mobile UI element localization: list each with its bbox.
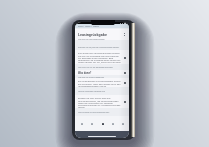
button[interactable]: Bringen Sie zum Termin bitte alle Fahrze… bbox=[75, 95, 129, 108]
button[interactable]: Was muss ich vor der Rückgabe beachten? bbox=[78, 65, 124, 68]
button[interactable]: Erfahren Sie hier, wie die Leasingrückga… bbox=[78, 45, 124, 48]
button[interactable]: Profile bbox=[118, 119, 127, 128]
button[interactable]: Home > Service > Leasing bbox=[75, 24, 129, 28]
button[interactable]: Menu bbox=[98, 119, 107, 128]
button[interactable]: Welche Unterlagen benötige ich? bbox=[78, 89, 124, 92]
staticText: Home > Service > Leasing bbox=[78, 25, 99, 27]
staticText: Bringen Sie zum Termin bitte alle Fahrze… bbox=[78, 97, 122, 108]
staticText: Wie wird der Zustand bewertet? bbox=[78, 76, 105, 78]
button[interactable]: Home bbox=[77, 119, 86, 128]
staticText: Was muss ich vor der Rückgabe beachten? bbox=[78, 66, 113, 68]
button[interactable]: Wie wird der Zustand bewertet? bbox=[78, 75, 124, 78]
staticText: 9:41 bbox=[78, 23, 82, 25]
staticText: Was dann? bbox=[78, 71, 92, 74]
staticText: Welche Unterlagen benötige ich? bbox=[78, 90, 106, 92]
staticText: Zum Ende Ihres Leasingvertrages erhalten… bbox=[78, 52, 122, 64]
button[interactable]: Wann erhalte ich die Endabrechnung? bbox=[78, 110, 124, 113]
staticText: Leasingrückgabe bbox=[78, 32, 107, 37]
button[interactable]: Leasingrückgabe bbox=[75, 29, 129, 40]
button[interactable]: More options bbox=[122, 33, 126, 37]
staticText: Wann erhalte ich die Endabrechnung? bbox=[78, 111, 110, 113]
button[interactable]: Was dann? bbox=[75, 70, 129, 75]
staticText: Ein unabhängiger Sachverständiger erstel… bbox=[78, 80, 122, 87]
staticText: Alle Infos zur Fahrzeugrückgabe bbox=[78, 38, 105, 40]
button[interactable]: Favorites bbox=[108, 119, 117, 128]
button[interactable]: Zum Ende Ihres Leasingvertrages erhalten… bbox=[75, 50, 129, 64]
button[interactable]: Search bbox=[87, 119, 96, 128]
button[interactable]: Ein unabhängiger Sachverständiger erstel… bbox=[75, 78, 129, 87]
staticText: Erfahren Sie hier, wie die Leasingrückga… bbox=[78, 46, 120, 48]
